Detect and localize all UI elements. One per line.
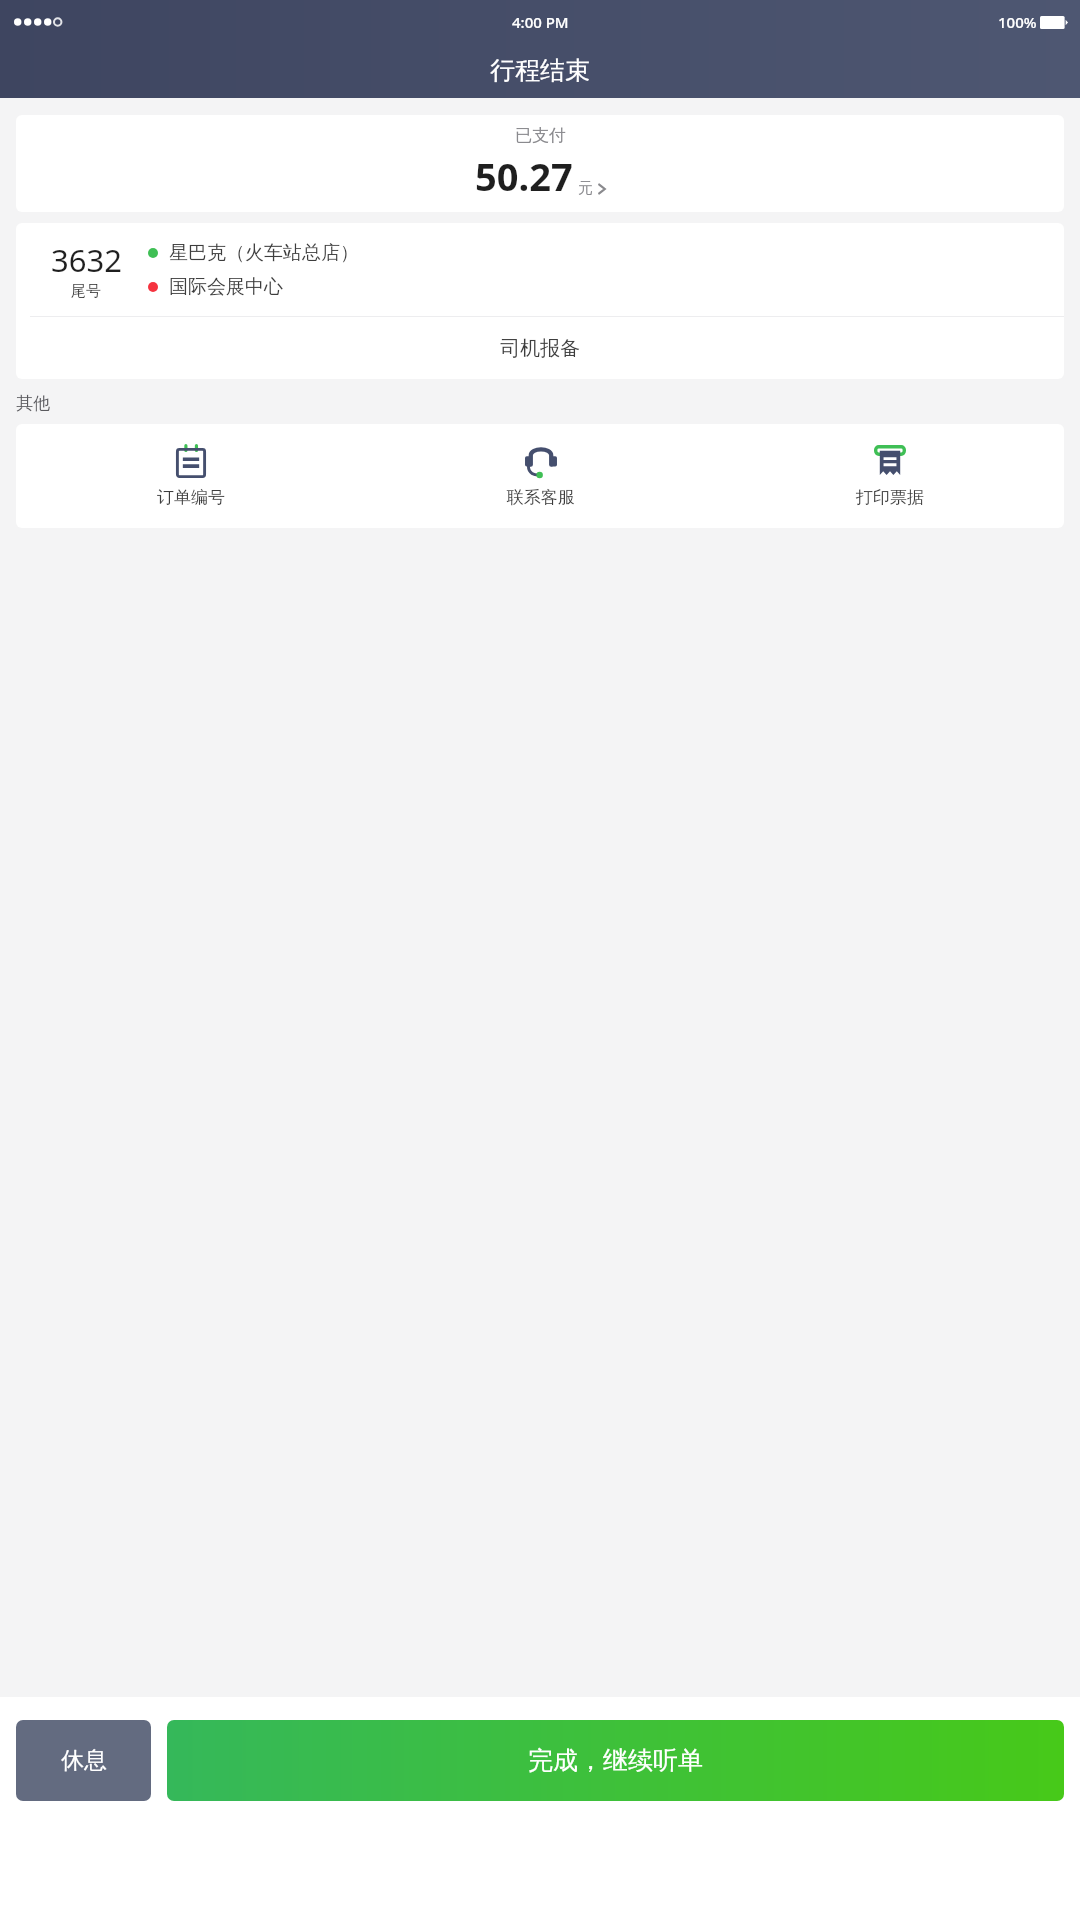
button[interactable]: 休息 (16, 1720, 151, 1801)
button[interactable]: 打印票据 (715, 424, 1064, 528)
staticText: 3632 (51, 239, 122, 281)
button[interactable]: 司机报备 (16, 317, 1064, 379)
staticText: 完成，继续听单 (528, 1745, 703, 1776)
staticText: 4:00 PM (512, 12, 569, 32)
staticText: 订单编号 (157, 487, 225, 508)
staticText: 休息 (61, 1746, 107, 1775)
staticText: 司机报备 (500, 336, 580, 361)
button[interactable]: 完成，继续听单 (167, 1720, 1064, 1801)
staticText: 元 (578, 179, 593, 198)
staticText: 其他 (16, 393, 50, 414)
button[interactable]: 订单编号 (16, 424, 366, 528)
staticText: 星巴克（火车站总店） (169, 241, 359, 265)
staticText: 国际会展中心 (169, 275, 283, 299)
staticText: 已支付 (515, 125, 566, 146)
staticText: 行程结束 (490, 55, 590, 86)
staticText: 100% (998, 12, 1037, 32)
button[interactable]: 3632 (16, 223, 1064, 316)
button[interactable]: 已支付 (16, 115, 1064, 212)
staticText: 尾号 (71, 282, 101, 301)
staticText: 打印票据 (856, 487, 924, 508)
staticText: 联系客服 (507, 487, 575, 508)
button[interactable]: 联系客服 (366, 424, 715, 528)
staticText: 50.27 (475, 150, 573, 202)
